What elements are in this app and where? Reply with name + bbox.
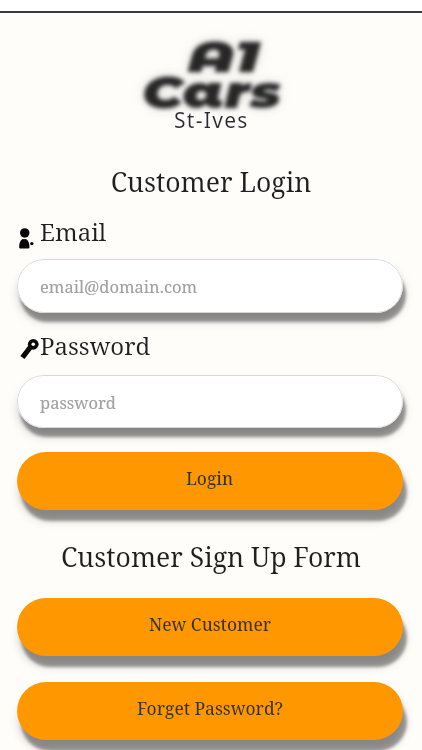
staticText: email@domain.com [40,275,198,297]
button[interactable]: Login [17,452,403,510]
staticText: A1 [188,31,260,82]
staticText: New Customer [149,613,272,636]
staticText: A1 [188,31,260,82]
staticText: Forget Password? [137,697,284,720]
other: Password field [17,328,177,368]
staticText: Cars [142,64,281,119]
staticText: St-Ives [174,106,249,135]
staticText: password [40,391,116,413]
staticText: Email [40,215,107,248]
other: Email field [17,214,127,254]
button[interactable]: New Customer [17,598,403,656]
button[interactable]: Forget Password? [17,682,403,740]
staticText: Customer Login [0,164,422,200]
staticText: Password [40,329,151,362]
staticText: Login [186,467,234,490]
staticText: Cars [142,64,281,119]
staticText: Customer Sign Up Form [0,539,422,575]
